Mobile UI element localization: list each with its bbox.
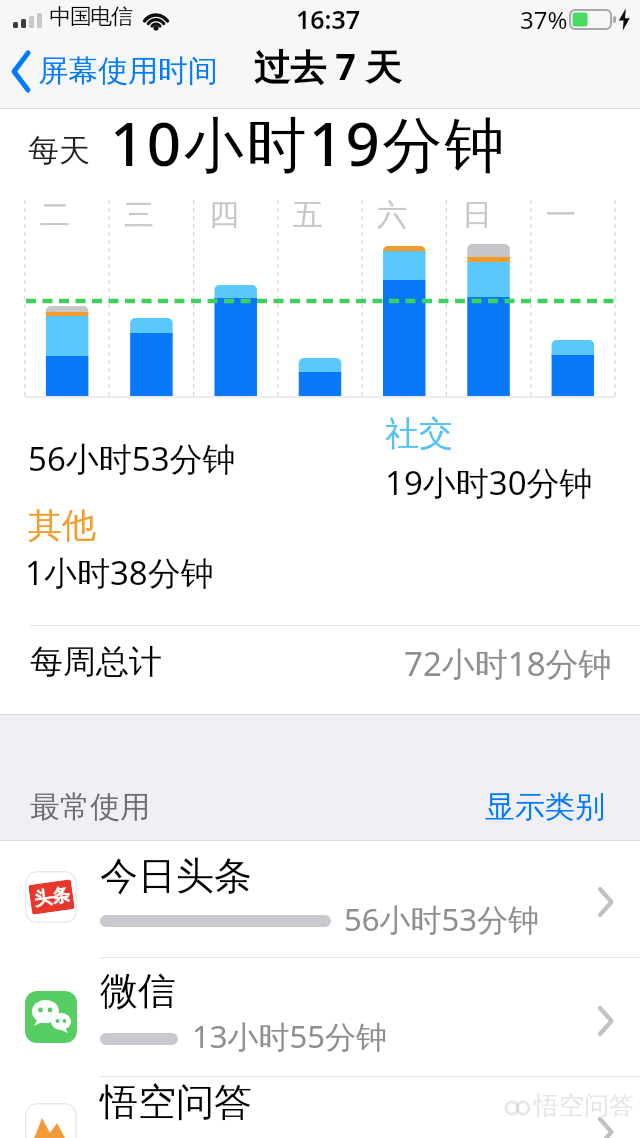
staticText: 37% <box>520 3 568 36</box>
staticText: 屏幕使用时间 <box>38 52 218 90</box>
staticText: 56小时53分钟 <box>344 898 539 940</box>
staticText: 1小时38分钟 <box>25 550 214 595</box>
staticText: 二 <box>40 196 70 234</box>
button[interactable]: 显示类别 <box>485 788 605 826</box>
button[interactable]: 微信 <box>0 958 640 1077</box>
staticText: 19小时30分钟 <box>385 460 593 505</box>
staticText: 其他 <box>28 504 96 547</box>
button[interactable]: 屏幕使用时间 <box>10 48 218 94</box>
staticText: 五 <box>293 196 323 234</box>
staticText: 最常使用 <box>30 788 150 826</box>
staticText: 72小时18分钟 <box>404 641 612 686</box>
staticText: 10小时19分钟 <box>110 102 508 184</box>
staticText: 悟空问答 <box>100 1078 252 1126</box>
staticText: 微信 <box>100 967 176 1015</box>
staticText: 四 <box>209 196 239 234</box>
staticText: 今日头条 <box>100 852 252 900</box>
staticText: 每天 <box>28 131 90 170</box>
button[interactable]: 头条 <box>0 841 640 958</box>
staticText: 头条 <box>33 883 71 911</box>
staticText: 社交 <box>385 412 453 455</box>
staticText: 13小时55分钟 <box>192 1015 387 1057</box>
staticText: 每周总计 <box>30 641 162 683</box>
staticText: 日 <box>462 196 492 234</box>
staticText: 悟空问答 <box>534 1090 634 1121</box>
staticText: 16:37 <box>296 2 361 36</box>
staticText: 中国电信 <box>50 3 132 31</box>
staticText: 一 <box>546 196 576 234</box>
staticText: 三 <box>124 196 154 234</box>
staticText: 56小时53分钟 <box>28 436 236 481</box>
staticText: 显示类别 <box>485 788 605 826</box>
staticText: 六 <box>377 196 407 234</box>
button[interactable]: 悟空问答 <box>0 1077 640 1138</box>
staticText: 过去 7 天 <box>254 42 402 91</box>
